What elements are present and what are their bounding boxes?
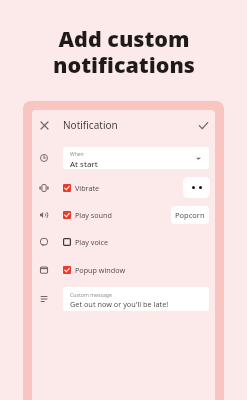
staticText: Notification bbox=[63, 118, 118, 132]
button[interactable]: When bbox=[63, 147, 209, 169]
button[interactable]: Vibrate bbox=[63, 178, 100, 198]
button[interactable]: Popup window bbox=[63, 260, 126, 280]
button[interactable]: Popcorn bbox=[171, 206, 209, 224]
button[interactable]: Play sound bbox=[63, 205, 112, 225]
staticText: Vibrate bbox=[75, 183, 100, 193]
staticText: At start bbox=[70, 159, 98, 169]
staticText: Popup window bbox=[75, 265, 126, 275]
button[interactable]: Custom message bbox=[63, 287, 209, 311]
button[interactable]: Close bbox=[32, 111, 215, 139]
staticText: Play sound bbox=[75, 210, 112, 220]
button[interactable]: Play voice bbox=[63, 232, 109, 252]
button[interactable]: Save bbox=[191, 111, 215, 139]
staticText: Add custom notifications bbox=[53, 24, 195, 80]
button[interactable]: Close bbox=[32, 111, 57, 139]
staticText: Custom message bbox=[70, 291, 112, 298]
staticText: Get out now or you'll be late! bbox=[70, 299, 169, 309]
staticText: When bbox=[70, 151, 84, 158]
button[interactable]: Vibration pattern bbox=[183, 177, 210, 198]
staticText: Popcorn bbox=[175, 210, 205, 220]
staticText: Play voice bbox=[75, 237, 109, 247]
